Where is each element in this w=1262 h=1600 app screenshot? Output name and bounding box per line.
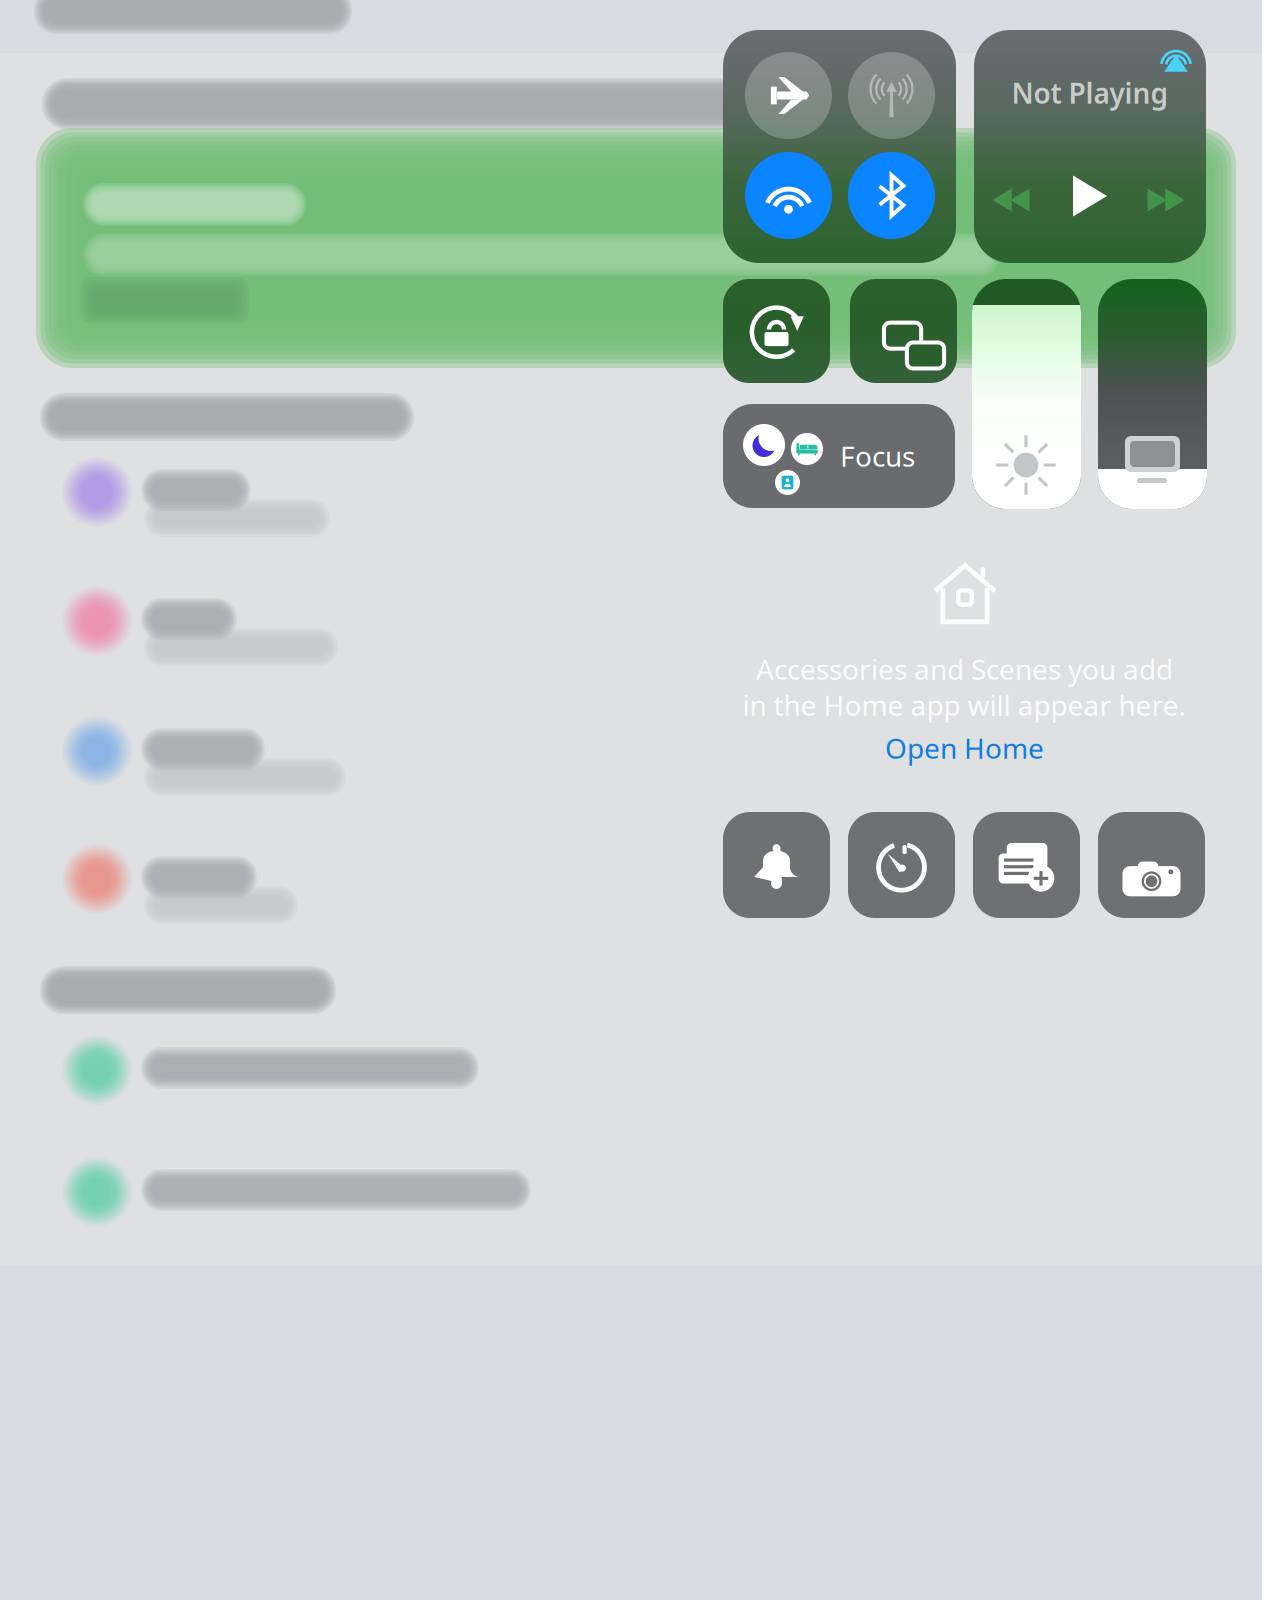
button[interactable]: Wi-Fi: [745, 152, 832, 239]
button[interactable]: Rotation Lock: [723, 279, 830, 383]
button[interactable]: Rewind: [983, 176, 1039, 224]
button[interactable]: AirPlay: [1158, 40, 1194, 76]
button[interactable]: Play: [1062, 172, 1118, 220]
button[interactable]: Brightness: [972, 279, 1081, 509]
staticText: Focus: [840, 437, 915, 475]
button[interactable]: Quick Note: [973, 812, 1080, 918]
button[interactable]: Airplane Mode: [745, 52, 832, 139]
staticText: in the Home app will appear here.: [742, 686, 1186, 724]
button[interactable]: Timer: [848, 812, 955, 918]
staticText: Open Home: [885, 729, 1044, 767]
button[interactable]: Volume: [1098, 279, 1207, 509]
button[interactable]: Fast Forward: [1138, 176, 1194, 224]
button[interactable]: Bluetooth: [848, 152, 935, 239]
staticText: Accessories and Scenes you add: [756, 650, 1173, 688]
button[interactable]: Camera: [1098, 812, 1205, 918]
staticText: Not Playing: [1011, 74, 1168, 112]
button[interactable]: Open Home: [723, 728, 1206, 768]
button[interactable]: Alarm: [723, 812, 830, 918]
button[interactable]: Screen Mirroring: [850, 279, 957, 383]
button[interactable]: Focus: [723, 404, 955, 508]
button[interactable]: Cellular Data: [848, 52, 935, 139]
